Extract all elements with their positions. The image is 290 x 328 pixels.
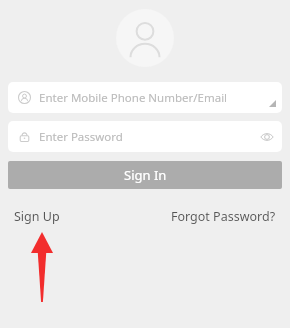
staticText: Forgot Password? [171,208,276,225]
button[interactable]: Forgot Password? [171,205,276,228]
button[interactable]: Enter Password [8,121,282,152]
button[interactable]: Enter Mobile Phone Number/Email [8,82,282,113]
button[interactable]: Profile avatar [116,9,174,67]
staticText: Sign In [124,166,167,184]
button[interactable]: Show password [259,129,275,145]
staticText: Enter Password [39,129,123,145]
staticText: Enter Mobile Phone Number/Email [39,90,228,106]
staticText: Sign Up [14,208,60,225]
button[interactable]: Sign Up [14,205,60,228]
button[interactable]: Sign In [8,161,282,189]
